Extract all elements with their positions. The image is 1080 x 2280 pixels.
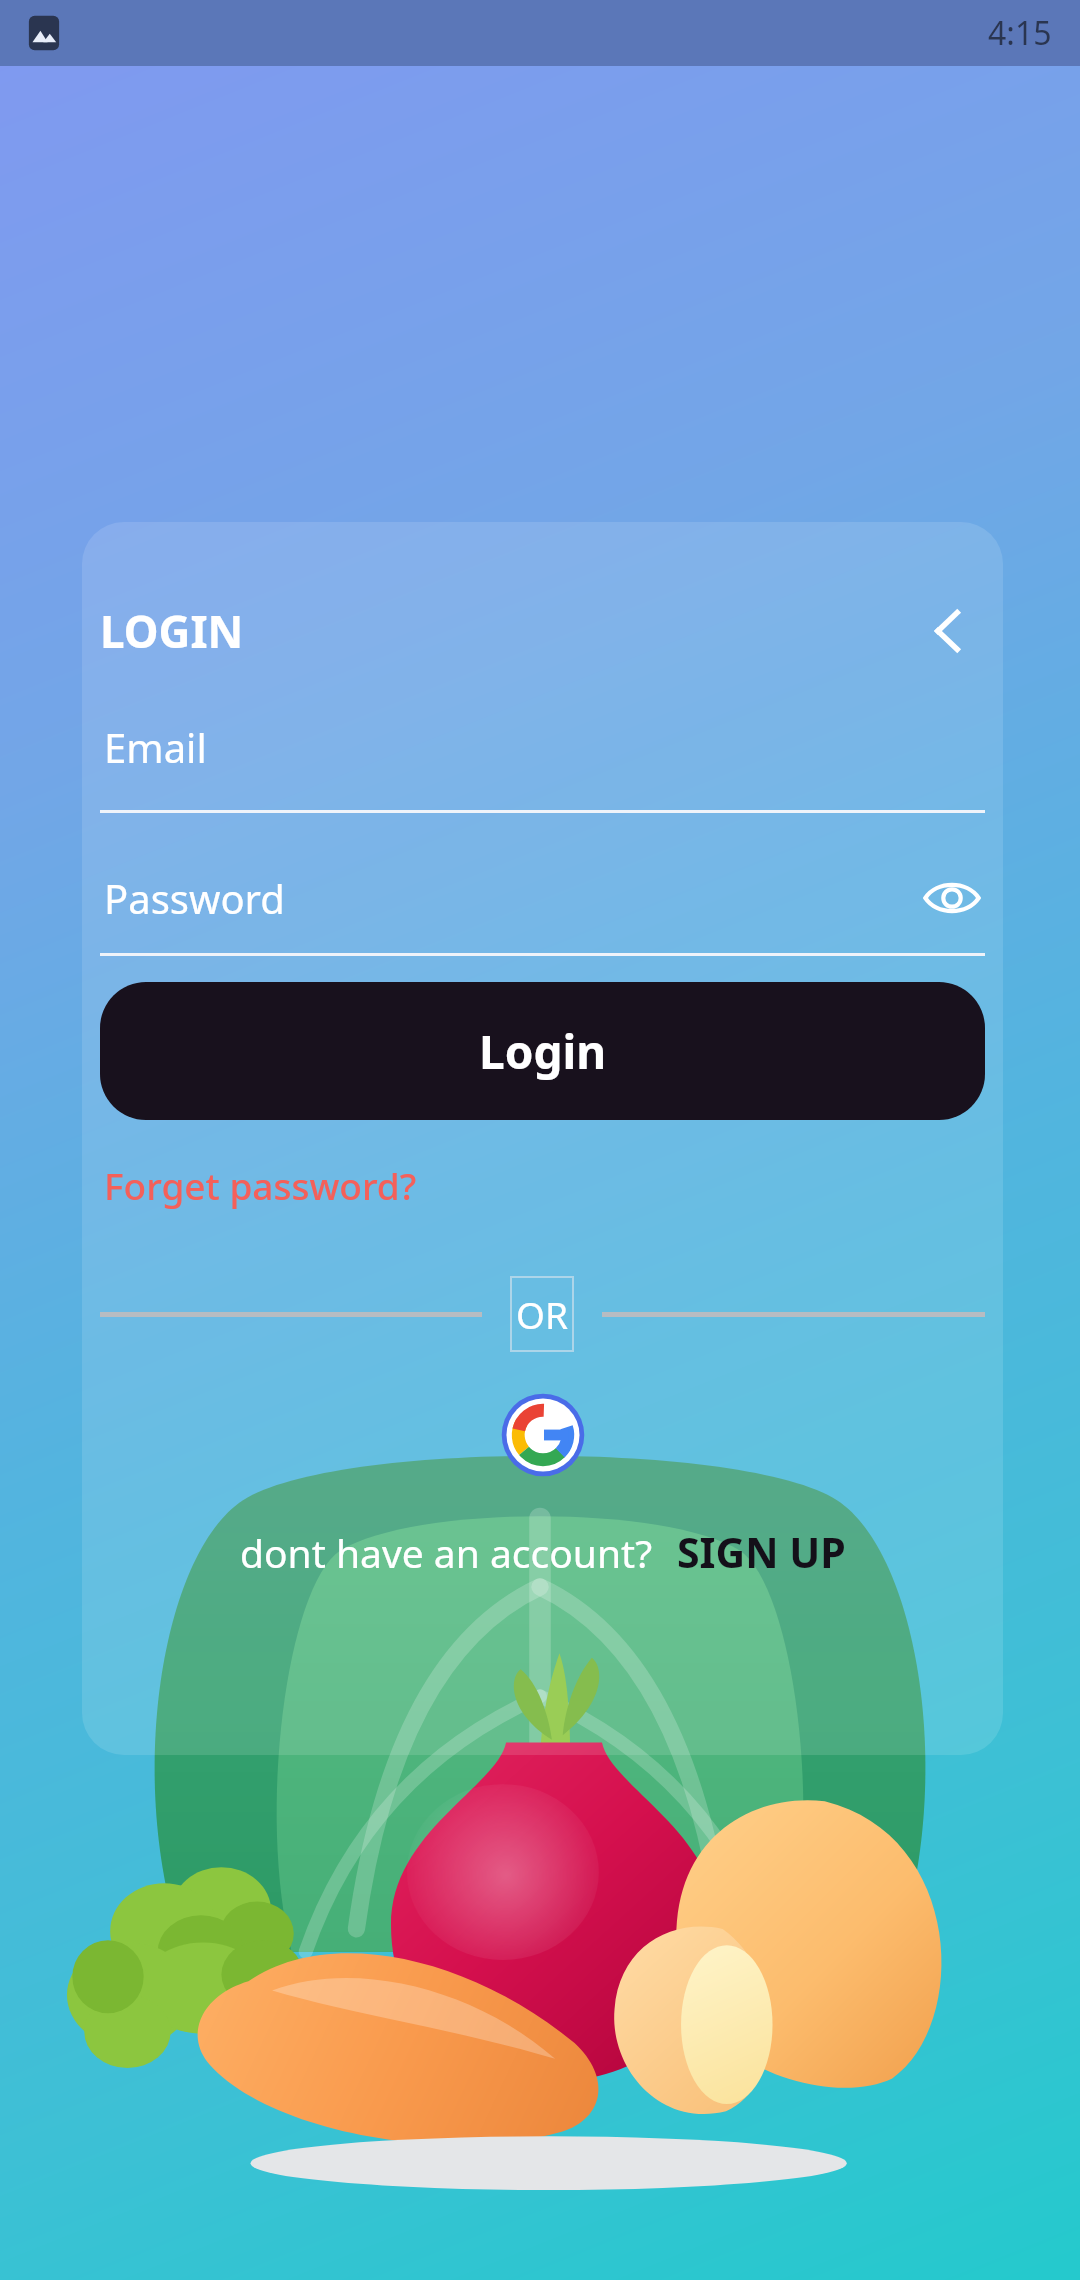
button[interactable]: Forget password? bbox=[104, 1160, 417, 1210]
button[interactable]: Sign in with Google bbox=[500, 1392, 586, 1478]
button[interactable]: SIGN UP bbox=[677, 1524, 846, 1580]
staticText: Password bbox=[104, 871, 285, 925]
button[interactable]: Login bbox=[100, 982, 985, 1120]
button[interactable]: Back bbox=[911, 594, 985, 668]
button[interactable]: Password bbox=[100, 865, 985, 956]
button[interactable]: LOGIN bbox=[100, 601, 244, 661]
staticText: Login bbox=[479, 1020, 607, 1083]
staticText: SIGN UP bbox=[677, 1524, 846, 1580]
staticText: 4:15 bbox=[988, 11, 1052, 55]
button[interactable]: Screenshot bbox=[26, 15, 62, 51]
staticText: OR bbox=[516, 1289, 568, 1339]
staticText: dont have an account? bbox=[240, 1526, 653, 1579]
staticText: Email bbox=[104, 720, 207, 774]
button[interactable]: Email bbox=[100, 720, 985, 813]
button[interactable]: Show password bbox=[919, 865, 985, 931]
